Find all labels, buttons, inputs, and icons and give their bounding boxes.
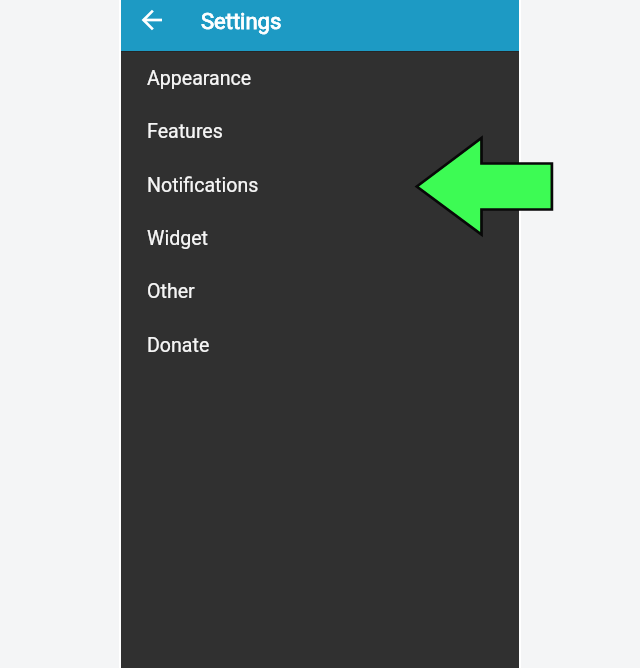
staticText: Appearance [147,67,252,90]
button[interactable]: Other [121,265,520,318]
button[interactable]: Features [121,105,520,158]
button[interactable]: Notifications [121,159,520,212]
button[interactable]: Widget [121,212,520,265]
staticText: Settings [201,9,282,35]
staticText: Widget [147,227,209,250]
staticText: Features [147,120,223,143]
staticText: Settings [201,9,282,35]
staticText: Other [147,280,195,303]
button[interactable]: Donate [121,319,520,372]
staticText: Notifications [147,174,259,197]
button[interactable]: Navigate up [133,0,173,40]
button[interactable]: Appearance [121,52,520,105]
staticText: Donate [147,334,210,357]
